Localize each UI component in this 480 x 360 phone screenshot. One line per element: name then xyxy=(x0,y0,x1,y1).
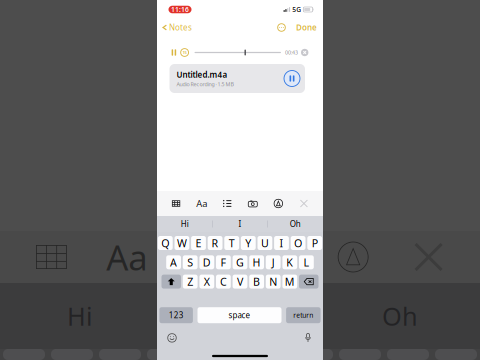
staticText: V xyxy=(237,274,243,289)
staticText: C xyxy=(220,274,227,289)
staticText: 15 xyxy=(183,50,187,55)
button[interactable]: 123 xyxy=(159,307,193,323)
button[interactable]: Done xyxy=(290,19,323,36)
button[interactable]: Q xyxy=(158,236,173,250)
staticText: E xyxy=(195,236,201,250)
button[interactable]: B xyxy=(249,275,264,289)
staticText: I xyxy=(235,299,244,333)
staticText: Notes xyxy=(169,22,192,33)
button[interactable]: Emoji xyxy=(166,332,178,344)
button[interactable]: X xyxy=(199,275,214,289)
button[interactable]: Dismiss keyboard xyxy=(297,198,310,209)
staticText: Q xyxy=(161,236,169,250)
staticText: G xyxy=(236,255,244,269)
staticText: J xyxy=(272,255,275,269)
staticText: Hi xyxy=(181,219,189,229)
button[interactable]: G xyxy=(233,255,247,269)
staticText: R xyxy=(212,236,219,250)
staticText: Aa xyxy=(196,197,207,210)
button[interactable]: R xyxy=(208,236,222,250)
staticText: Y xyxy=(245,236,251,250)
button[interactable]: space xyxy=(197,307,281,323)
button[interactable]: O xyxy=(291,236,305,250)
button[interactable]: Dictation xyxy=(302,332,314,344)
button[interactable]: S xyxy=(183,255,198,269)
button[interactable]: H xyxy=(249,255,264,269)
button[interactable]: Markup xyxy=(272,198,285,209)
staticText: Aa xyxy=(106,234,147,280)
button[interactable]: More options xyxy=(276,19,287,36)
staticText: return xyxy=(293,311,313,320)
button[interactable]: Notes xyxy=(157,19,197,36)
button[interactable]: P xyxy=(307,236,322,250)
staticText: Z xyxy=(187,274,193,289)
staticText: Oh xyxy=(382,299,418,333)
staticText: A xyxy=(170,255,177,269)
staticText: B xyxy=(253,274,260,289)
button[interactable]: M xyxy=(282,275,297,289)
staticText: H xyxy=(253,255,261,269)
button[interactable]: W xyxy=(174,236,189,250)
button[interactable]: E xyxy=(191,236,206,250)
staticText: N xyxy=(269,274,277,289)
button[interactable]: Y xyxy=(241,236,256,250)
button[interactable]: L xyxy=(299,255,314,269)
staticText: U xyxy=(261,236,269,250)
staticText: P xyxy=(312,236,318,250)
button[interactable]: D xyxy=(199,255,214,269)
staticText: Oh xyxy=(290,219,301,229)
staticText: 5G xyxy=(292,5,301,14)
button[interactable]: V xyxy=(233,275,247,289)
staticText: O xyxy=(294,236,302,250)
staticText: Audio Recording · 1.5 MB xyxy=(176,80,233,88)
staticText: space xyxy=(228,310,250,320)
button[interactable]: J xyxy=(266,255,281,269)
button[interactable]: return xyxy=(286,307,321,323)
staticText: K xyxy=(286,255,293,269)
button[interactable]: A xyxy=(166,255,181,269)
button[interactable]: Insert table xyxy=(170,198,183,209)
staticText: D xyxy=(203,255,211,269)
staticText: I xyxy=(279,236,283,250)
staticText: X xyxy=(204,274,210,289)
button[interactable]: K xyxy=(282,255,297,269)
button[interactable] xyxy=(161,275,181,289)
staticText: F xyxy=(220,255,226,269)
button[interactable]: Z xyxy=(183,275,198,289)
button[interactable]: Close player xyxy=(301,49,308,56)
button[interactable]: T xyxy=(224,236,239,250)
button[interactable]: Skip back 15 seconds xyxy=(181,49,188,56)
staticText: Untitled.m4a xyxy=(176,69,227,80)
button[interactable]: C xyxy=(216,275,231,289)
button[interactable]: I xyxy=(213,216,267,232)
staticText: I xyxy=(238,219,241,229)
staticText: 00:43 xyxy=(285,49,298,56)
button[interactable]: Play recording xyxy=(284,70,300,86)
staticText: Done xyxy=(296,22,317,33)
button[interactable]: Aa xyxy=(195,198,208,209)
staticText: 11:16 xyxy=(171,5,189,14)
staticText: Hi xyxy=(67,299,93,333)
button[interactable]: U xyxy=(257,236,272,250)
staticText: 123 xyxy=(169,310,184,320)
button[interactable]: I xyxy=(274,236,289,250)
button[interactable]: Checklist xyxy=(221,198,234,209)
button[interactable]: F xyxy=(216,255,231,269)
staticText: W xyxy=(177,236,187,250)
button[interactable]: Hi xyxy=(157,216,212,232)
button[interactable] xyxy=(299,275,318,289)
staticText: T xyxy=(229,236,235,250)
button[interactable]: Oh xyxy=(268,216,323,232)
staticText: S xyxy=(187,255,193,269)
button[interactable]: Pause xyxy=(172,49,176,56)
staticText: M xyxy=(285,274,295,289)
button[interactable]: N xyxy=(266,275,281,289)
staticText: L xyxy=(303,255,309,269)
button[interactable]: Camera xyxy=(246,198,259,209)
